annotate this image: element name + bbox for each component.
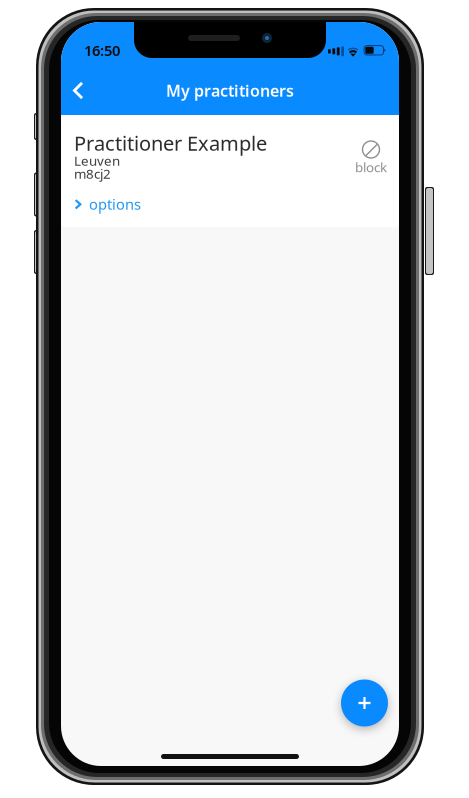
staticText: Leuven: [74, 152, 120, 169]
button[interactable]: options: [74, 195, 393, 213]
staticText: 16:50: [84, 40, 120, 60]
staticText: My practitioners: [166, 80, 294, 101]
button[interactable]: Back: [61, 67, 97, 113]
staticText: block: [355, 158, 387, 176]
staticText: m8cj2: [74, 165, 111, 182]
button[interactable]: Add practitioner: [336, 674, 393, 732]
button[interactable]: Block practitioner: [349, 132, 393, 195]
staticText: options: [89, 194, 141, 214]
staticText: Practitioner Example: [74, 130, 267, 156]
